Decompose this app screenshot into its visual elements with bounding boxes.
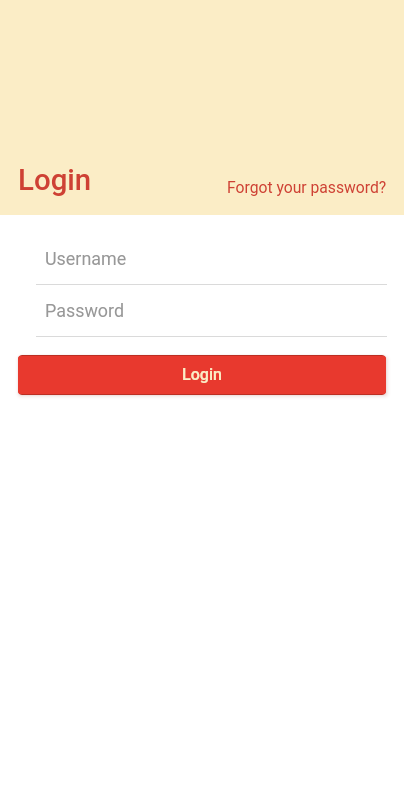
button[interactable]: Username [36, 240, 387, 285]
staticText: Password [45, 300, 125, 321]
button[interactable]: Password [36, 292, 387, 337]
staticText: Login [182, 365, 222, 384]
staticText: Username [45, 248, 127, 269]
button[interactable]: Forgot your password? [219, 170, 379, 204]
staticText: Forgot your password? [227, 178, 387, 196]
button[interactable]: Login [18, 355, 386, 395]
staticText: Login [18, 163, 92, 197]
button[interactable]: Login [14, 160, 88, 200]
